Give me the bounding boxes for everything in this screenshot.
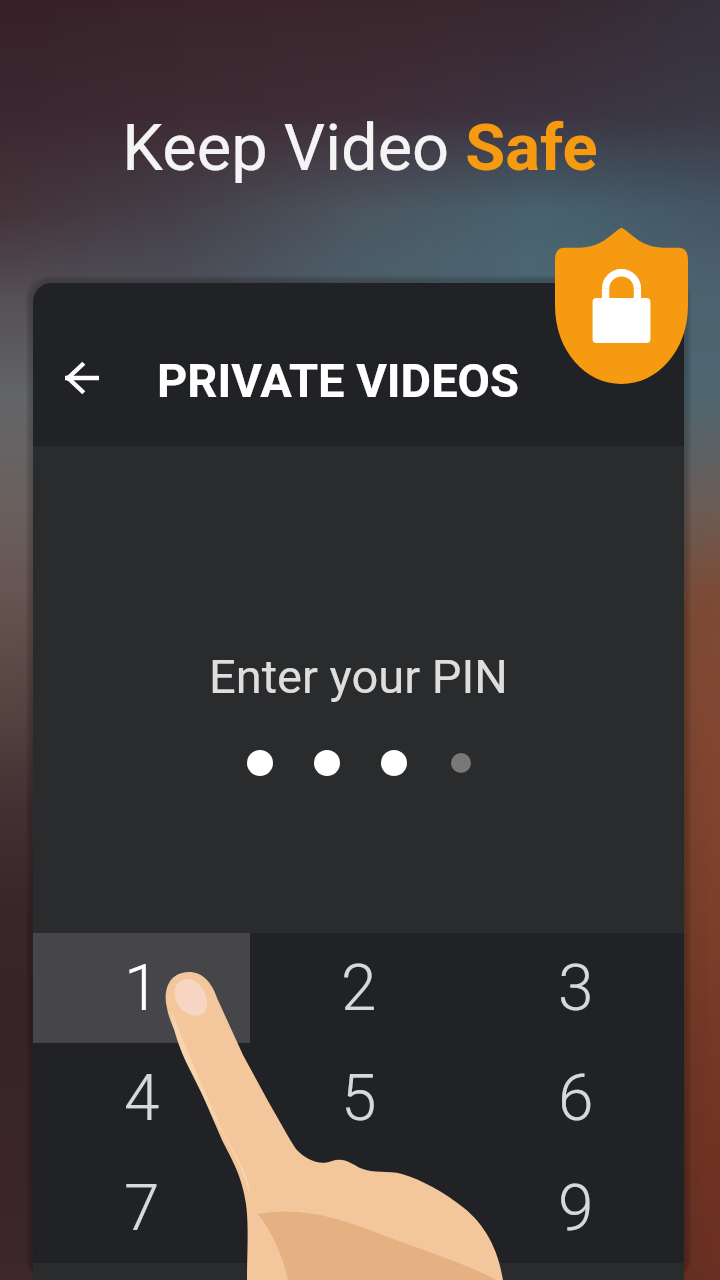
button[interactable]: 3 (467, 933, 684, 1043)
button[interactable]: 7 (33, 1153, 250, 1263)
staticText: 5 (341, 1061, 377, 1136)
staticText: Enter your PIN (209, 649, 508, 704)
button[interactable]: 8 (250, 1153, 467, 1263)
button[interactable]: 1 (33, 933, 250, 1043)
button[interactable]: 9 (467, 1153, 684, 1263)
staticText: PRIVATE VIDEOS (157, 353, 519, 408)
staticText: Keep Video Safe (122, 110, 598, 186)
button[interactable]: Back (49, 345, 115, 411)
button[interactable]: 4 (33, 1043, 250, 1153)
staticText: 3 (558, 951, 594, 1026)
button[interactable]: 6 (467, 1043, 684, 1153)
staticText: 9 (558, 1171, 594, 1246)
staticText: 6 (558, 1061, 594, 1136)
button[interactable]: 2 (250, 933, 467, 1043)
staticText: 2 (341, 951, 377, 1026)
staticText: 1 (124, 951, 160, 1026)
staticText: 7 (124, 1171, 160, 1246)
staticText: 4 (124, 1061, 160, 1136)
button[interactable]: 5 (250, 1043, 467, 1153)
staticText: 8 (341, 1171, 377, 1246)
